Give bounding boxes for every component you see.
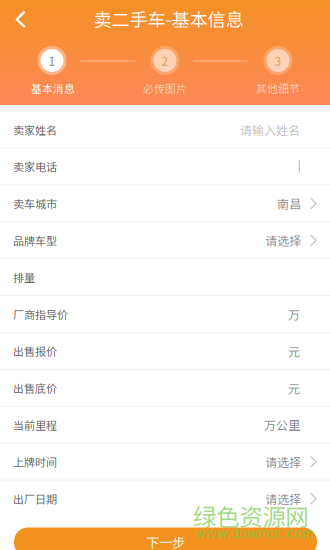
staticText: 请输入姓名 [240, 121, 300, 138]
button[interactable]: 排量 [0, 259, 330, 295]
staticText: 3 [274, 52, 281, 69]
staticText: 上牌时间 [13, 454, 57, 470]
button[interactable]: 厂商指导价 [0, 296, 330, 332]
staticText: 请选择 [265, 232, 301, 249]
staticText: 万 [288, 305, 300, 323]
staticText: 出售报价 [13, 343, 57, 359]
staticText: 万公里 [264, 416, 300, 434]
staticText: 元 [288, 379, 300, 397]
button[interactable]: 下一步 [14, 527, 317, 550]
staticText: 1 [48, 52, 55, 69]
button[interactable]: 返回 [0, 0, 40, 39]
button[interactable]: 出售报价 [0, 333, 330, 369]
button[interactable]: 出售底价 [0, 370, 330, 406]
staticText: 当前里程 [13, 417, 57, 433]
staticText: 元 [288, 342, 300, 360]
button[interactable]: 品牌车型 [0, 222, 330, 258]
button[interactable]: 卖车城市 [0, 185, 330, 221]
staticText: 下一步 [146, 532, 185, 550]
button[interactable]: 卖家电话 [0, 149, 330, 184]
staticText: 卖家姓名 [13, 122, 57, 138]
staticText: 卖二手车-基本信息 [93, 5, 243, 32]
staticText: 其他细节 [256, 80, 300, 96]
button[interactable]: 卖家姓名 [0, 112, 330, 148]
staticText: 卖车城市 [13, 195, 57, 211]
staticText: 请选择 [265, 490, 301, 507]
staticText: 厂商指导价 [13, 306, 68, 322]
staticText: 出售底价 [13, 380, 57, 396]
staticText: 必传图片 [143, 80, 187, 96]
staticText: 南昌 [277, 195, 301, 212]
button[interactable]: 出厂日期 [0, 481, 330, 517]
staticText: 请选择 [265, 453, 301, 470]
staticText: www.downcc.com [196, 525, 315, 541]
button[interactable]: 上牌时间 [0, 444, 330, 480]
staticText: 出厂日期 [13, 491, 57, 507]
staticText: 品牌车型 [13, 232, 57, 248]
staticText: 绿色资源网 [193, 499, 308, 533]
button[interactable]: 当前里程 [0, 407, 330, 443]
staticText: 2 [161, 52, 168, 69]
staticText: 排量 [13, 269, 35, 285]
staticText: 卖家电话 [13, 158, 57, 174]
staticText: 基本消息 [31, 80, 75, 96]
